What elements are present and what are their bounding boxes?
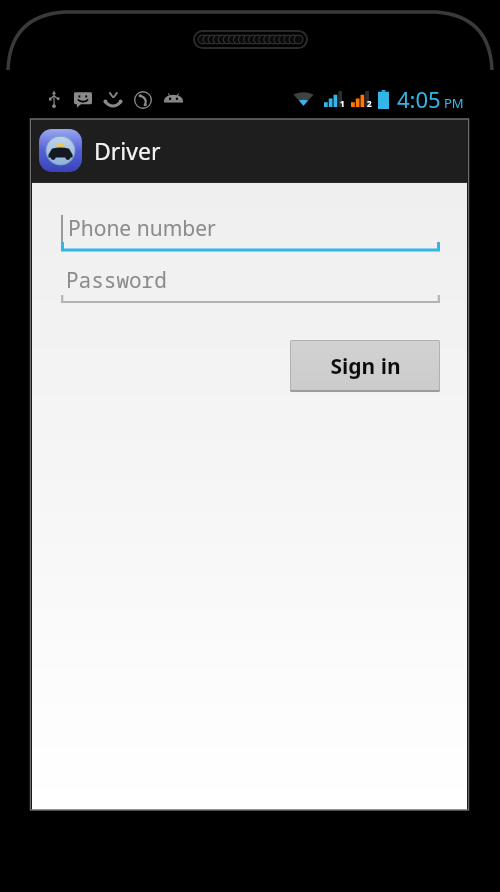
staticText: 4:05 — [397, 84, 441, 114]
staticText: Phone number — [68, 214, 216, 243]
button[interactable]: Sign in — [290, 340, 440, 392]
staticText: PM — [444, 94, 464, 112]
staticText: Sign in — [330, 352, 401, 381]
staticText: Driver — [94, 135, 161, 166]
button[interactable]: Password — [61, 256, 440, 304]
staticText: 1 — [340, 98, 345, 109]
button[interactable]: Phone number — [61, 204, 440, 252]
button[interactable]: Driver — [32, 119, 467, 182]
staticText: Password — [66, 266, 167, 295]
staticText: 2 — [367, 98, 372, 109]
